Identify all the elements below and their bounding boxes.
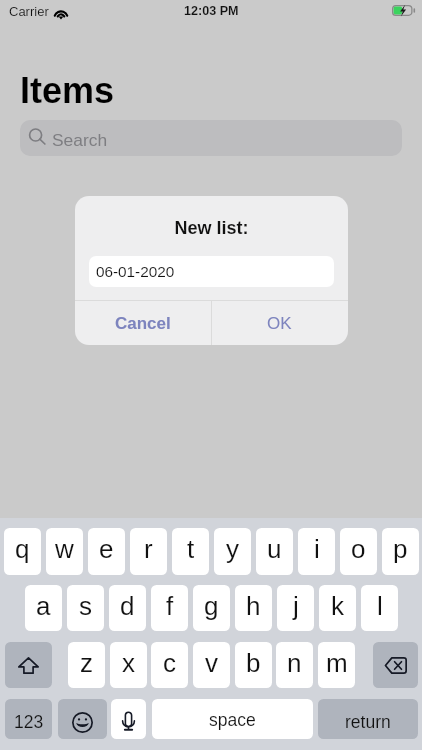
staticText: r xyxy=(144,534,153,563)
staticText: e xyxy=(99,534,114,563)
button[interactable]: b xyxy=(235,642,272,688)
staticText: 06-01-2020 xyxy=(96,263,175,280)
button[interactable]: q xyxy=(4,528,41,575)
button[interactable]: 123 xyxy=(5,699,52,739)
staticText: return xyxy=(345,712,391,732)
staticText: OK xyxy=(267,314,292,333)
staticText: New list: xyxy=(75,218,348,238)
button[interactable]: v xyxy=(193,642,230,688)
button[interactable]: t xyxy=(172,528,209,575)
button[interactable]: e xyxy=(88,528,125,575)
button[interactable]: j xyxy=(277,585,314,631)
button[interactable]: u xyxy=(256,528,293,575)
button[interactable]: m xyxy=(318,642,355,688)
button[interactable]: x xyxy=(110,642,147,688)
staticText: u xyxy=(267,534,282,563)
button[interactable]: n xyxy=(276,642,313,688)
button[interactable]: d xyxy=(109,585,146,631)
staticText: z xyxy=(80,648,93,677)
button[interactable]: Shift xyxy=(5,642,52,688)
staticText: m xyxy=(326,648,348,677)
button[interactable]: Dictation xyxy=(111,699,146,739)
staticText: p xyxy=(393,534,408,563)
staticText: x xyxy=(122,648,135,677)
staticText: o xyxy=(351,534,366,563)
button[interactable]: p xyxy=(382,528,419,575)
button[interactable]: z xyxy=(68,642,105,688)
staticText: h xyxy=(246,591,261,620)
button[interactable]: y xyxy=(214,528,251,575)
staticText: y xyxy=(226,534,239,563)
button[interactable]: k xyxy=(319,585,356,631)
staticText: Items xyxy=(20,70,115,110)
button[interactable]: l xyxy=(361,585,398,631)
button[interactable]: a xyxy=(25,585,62,631)
staticText: 123 xyxy=(14,712,44,732)
staticText: Cancel xyxy=(115,314,171,333)
button[interactable]: w xyxy=(46,528,83,575)
staticText: s xyxy=(79,591,92,620)
staticText: n xyxy=(287,648,302,677)
button[interactable]: return xyxy=(318,699,418,739)
staticText: i xyxy=(314,534,320,563)
button[interactable]: g xyxy=(193,585,230,631)
staticText: t xyxy=(187,534,195,563)
staticText: l xyxy=(377,591,383,620)
button[interactable]: r xyxy=(130,528,167,575)
button[interactable]: o xyxy=(340,528,377,575)
staticText: Search xyxy=(52,130,108,149)
staticText: q xyxy=(15,534,30,563)
staticText: c xyxy=(163,648,176,677)
button[interactable]: 06-01-2020 xyxy=(89,256,334,287)
staticText: b xyxy=(246,648,261,677)
staticText: a xyxy=(36,591,51,620)
button[interactable]: Emoji xyxy=(58,699,107,739)
button[interactable]: i xyxy=(298,528,335,575)
staticText: w xyxy=(55,534,74,563)
button[interactable]: Search xyxy=(20,120,402,156)
staticText: v xyxy=(205,648,218,677)
staticText: g xyxy=(204,591,219,620)
button[interactable]: OK xyxy=(211,301,348,345)
button[interactable]: Backspace xyxy=(373,642,418,688)
staticText: f xyxy=(166,591,174,620)
button[interactable]: space xyxy=(152,699,313,739)
button[interactable]: Cancel xyxy=(75,301,211,345)
staticText: k xyxy=(331,591,344,620)
button[interactable]: f xyxy=(151,585,188,631)
staticText: j xyxy=(293,591,299,620)
button[interactable]: h xyxy=(235,585,272,631)
button[interactable]: s xyxy=(67,585,104,631)
staticText: Carrier xyxy=(9,4,49,19)
button[interactable]: c xyxy=(151,642,188,688)
staticText: space xyxy=(209,710,256,730)
staticText: d xyxy=(120,591,135,620)
staticText: 12:03 PM xyxy=(184,4,239,18)
